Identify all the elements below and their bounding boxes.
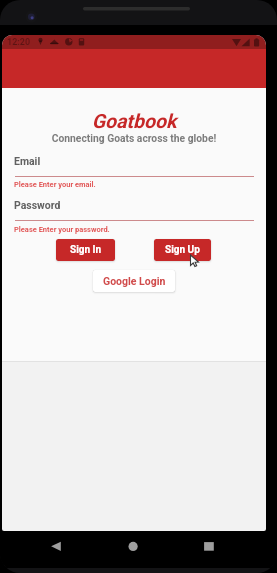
staticText: Password — [14, 199, 61, 211]
staticText: Sign Up — [165, 244, 200, 256]
staticText: Email — [14, 155, 41, 167]
button[interactable]: Sign In — [56, 239, 115, 261]
staticText: Goatbook — [2, 110, 266, 133]
button[interactable]: Google Login — [93, 270, 175, 292]
staticText: 12:20 — [7, 37, 31, 48]
button[interactable]: Recent apps — [189, 531, 229, 565]
staticText: Please Enter your password. — [14, 225, 110, 234]
staticText: Connecting Goats across the globe! — [2, 132, 266, 144]
staticText: Google Login — [103, 275, 166, 287]
staticText: Please Enter your email. — [14, 180, 96, 189]
staticText: Sign In — [70, 244, 102, 256]
button[interactable]: Home — [113, 531, 153, 565]
button[interactable]: Back — [36, 531, 76, 565]
button[interactable]: Sign Up — [154, 239, 211, 261]
